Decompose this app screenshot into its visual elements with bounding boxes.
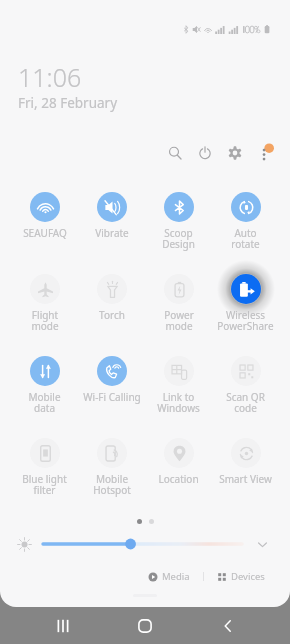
button[interactable]: Blue light filter	[11, 423, 78, 505]
staticText: Flight mode	[31, 308, 59, 333]
button[interactable]: Devices	[215, 570, 267, 583]
staticText: Scan QR code	[226, 390, 265, 415]
button[interactable]: Vibrate	[78, 177, 145, 259]
button[interactable]: Flight mode	[11, 259, 78, 341]
button[interactable]: Settings	[222, 140, 248, 166]
button[interactable]: Power mode	[145, 259, 212, 341]
button[interactable]: Power	[192, 140, 218, 166]
staticText: Mobile data	[28, 390, 61, 415]
button[interactable]: Mobile data	[11, 341, 78, 423]
staticText: Smart View	[219, 472, 272, 486]
button[interactable]: Home	[125, 607, 165, 644]
button[interactable]: Smart View	[212, 423, 279, 505]
staticText: Wireless PowerShare	[217, 308, 274, 333]
staticText: Auto rotate	[231, 226, 260, 251]
staticText: 11:06	[18, 60, 82, 94]
button[interactable]: Location	[145, 423, 212, 505]
button[interactable]: Recents	[43, 607, 83, 644]
button[interactable]: Mobile Hotspot	[78, 423, 145, 505]
staticText: Media	[162, 570, 190, 583]
button[interactable]: Torch	[78, 259, 145, 341]
staticText: Devices	[231, 570, 265, 583]
button[interactable]: Media	[146, 570, 192, 583]
button[interactable]: SEAUFAQ	[11, 177, 78, 259]
button[interactable]: Auto rotate	[212, 177, 279, 259]
staticText: Vibrate	[95, 226, 129, 240]
staticText: Wi-Fi Calling	[83, 390, 141, 404]
staticText: Fri, 28 February	[18, 94, 118, 112]
button[interactable]: Wireless PowerShare	[212, 259, 279, 341]
staticText: SEAUFAQ	[23, 226, 67, 240]
button[interactable]: Link to Windows	[145, 341, 212, 423]
staticText: Scoop Design	[162, 226, 195, 251]
button[interactable]: Back	[208, 607, 248, 644]
staticText: Power mode	[164, 308, 194, 333]
button[interactable]: Expand	[251, 533, 273, 555]
staticText: Blue light filter	[22, 472, 67, 497]
button[interactable]: Scoop Design	[145, 177, 212, 259]
staticText: Location	[158, 472, 199, 486]
button[interactable]: Scan QR code	[212, 341, 279, 423]
staticText: Torch	[99, 308, 125, 322]
staticText: Mobile Hotspot	[93, 472, 131, 497]
button[interactable]: Wi-Fi Calling	[78, 341, 145, 423]
button[interactable]: Brightness	[43, 534, 242, 554]
button[interactable]: More options	[252, 140, 278, 166]
button[interactable]: Search	[162, 140, 188, 166]
staticText: Link to Windows	[157, 390, 200, 415]
